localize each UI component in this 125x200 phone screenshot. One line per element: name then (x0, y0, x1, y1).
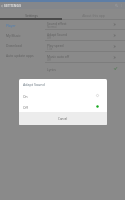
staticText: Adapt Sound (47, 32, 67, 36)
staticText: Play speed (47, 43, 64, 47)
button[interactable]: Navigate up (0, 2, 4, 9)
staticText: Normal (47, 25, 57, 29)
button[interactable]: Search (114, 3, 119, 8)
staticText: About this app (82, 13, 105, 17)
button[interactable]: Sound effect (45, 19, 125, 30)
staticText: On (23, 94, 96, 98)
button[interactable]: Adapt Sound (45, 30, 125, 41)
button[interactable]: Player (6, 20, 45, 30)
button[interactable]: About this app (62, 9, 125, 20)
button[interactable]: Play speed (45, 41, 125, 52)
button[interactable]: Download (6, 40, 45, 50)
button[interactable]: Off (19, 101, 107, 112)
button[interactable]: On (19, 90, 107, 101)
staticText: Settings (25, 13, 38, 17)
staticText: Download (6, 43, 22, 47)
button[interactable]: Lyrics (47, 63, 117, 74)
staticText: Off (47, 36, 51, 40)
staticText: Music auto off (47, 54, 70, 58)
staticText: Lyrics (47, 67, 114, 71)
button[interactable]: Cancel (19, 112, 107, 125)
staticText: 1.0x (47, 47, 53, 51)
staticText: SETTINGS (4, 4, 22, 8)
staticText: Off (47, 58, 51, 62)
staticText: My Music (6, 33, 21, 37)
staticText: Auto update apps (6, 53, 34, 57)
staticText: Sound effect (47, 21, 67, 25)
button[interactable]: Settings (0, 9, 62, 20)
staticText: Cancel (58, 117, 68, 121)
button[interactable]: Auto update apps (6, 50, 45, 60)
staticText: Off (23, 105, 96, 109)
staticText: Player (6, 23, 16, 27)
button[interactable]: My Music (6, 30, 45, 40)
button[interactable]: Music auto off (45, 52, 125, 63)
staticText: Adapt Sound (23, 82, 45, 87)
